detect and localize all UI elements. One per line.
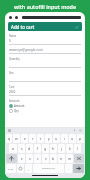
button[interactable]: Voice input	[73, 129, 76, 132]
staticText: e	[24, 136, 26, 141]
button[interactable]: g	[42, 144, 49, 153]
staticText: g	[44, 146, 47, 151]
staticText: h	[52, 146, 55, 151]
button[interactable]: i	[61, 134, 68, 143]
button[interactable]: u	[53, 134, 60, 143]
staticText: v	[45, 156, 47, 161]
staticText: w	[15, 136, 18, 141]
staticText: English (US)	[42, 167, 55, 170]
staticText: s	[21, 146, 23, 151]
button[interactable]: Amount	[9, 104, 81, 108]
staticText: Qty	[14, 109, 19, 113]
button[interactable]: English (US)	[33, 164, 64, 173]
staticText: j	[61, 146, 62, 151]
button[interactable]: Backspace	[74, 154, 84, 163]
button[interactable]: o	[69, 134, 76, 143]
button[interactable]: k	[66, 144, 73, 153]
staticText: b	[52, 156, 55, 161]
button[interactable]: Size	[9, 71, 81, 82]
staticText: r	[32, 136, 34, 141]
staticText: Quantity	[9, 57, 20, 61]
button[interactable]: t	[37, 134, 44, 143]
button[interactable]: www.xyz@google.co.in	[9, 48, 81, 54]
staticText: a	[12, 146, 14, 151]
staticText: Amount	[14, 104, 25, 108]
staticText: with autofill input mode	[0, 3, 90, 10]
staticText: m	[68, 156, 72, 161]
button[interactable]: r	[29, 134, 36, 143]
button[interactable]: l	[74, 144, 81, 153]
staticText: y	[48, 136, 50, 141]
button[interactable]: w	[13, 134, 20, 143]
staticText: p	[79, 136, 82, 141]
staticText: www.xyz@google.co.in	[9, 48, 44, 52]
button[interactable]: q	[6, 134, 12, 143]
button[interactable]: Qty	[9, 109, 81, 113]
staticText: i	[64, 136, 65, 141]
staticText: o	[71, 136, 74, 141]
staticText: Amount	[9, 99, 20, 103]
staticText: Size	[9, 71, 14, 75]
button[interactable]: z	[18, 154, 25, 163]
staticText: Name	[9, 34, 17, 38]
staticText: Cost	[9, 85, 15, 89]
button[interactable]: n	[58, 154, 65, 163]
button[interactable]: b	[50, 154, 57, 163]
button[interactable]: Settings	[79, 129, 82, 132]
button[interactable]: ,	[25, 164, 32, 173]
button[interactable]: p	[77, 134, 84, 143]
staticText: ?123	[8, 167, 14, 170]
staticText: c	[37, 156, 39, 161]
button[interactable]: Emoji	[17, 164, 24, 173]
staticText: .	[68, 166, 69, 171]
staticText: q	[8, 136, 11, 141]
staticText: l	[77, 146, 78, 151]
staticText: d	[28, 146, 31, 151]
button[interactable]: a	[9, 144, 17, 153]
staticText: x	[29, 156, 31, 161]
button[interactable]: Name	[9, 34, 81, 45]
button[interactable]: c	[34, 154, 41, 163]
staticText: Add to cart	[11, 24, 35, 30]
button[interactable]: Add to cart	[8, 22, 82, 31]
button[interactable]: Quantity	[9, 57, 81, 68]
staticText: n	[60, 156, 63, 161]
button[interactable]: Enter	[73, 164, 84, 173]
staticText: 20.0	[9, 90, 16, 94]
button[interactable]: j	[58, 144, 65, 153]
button[interactable]: .	[65, 164, 72, 173]
button[interactable]: h	[50, 144, 57, 153]
button[interactable]: y	[45, 134, 52, 143]
button[interactable]: e	[21, 134, 28, 143]
staticText: t	[40, 136, 42, 141]
button[interactable]: d	[26, 144, 33, 153]
staticText: S	[9, 39, 11, 43]
staticText: f	[37, 146, 39, 151]
button[interactable]: f	[34, 144, 41, 153]
staticText: z	[21, 156, 23, 161]
button[interactable]: x	[26, 154, 33, 163]
button[interactable]: m	[66, 154, 73, 163]
button[interactable]: Shift	[6, 154, 17, 163]
staticText: k	[69, 146, 71, 151]
staticText: u	[55, 136, 58, 141]
staticText: ,	[28, 166, 29, 171]
button[interactable]: ?123	[6, 164, 16, 173]
button[interactable]: s	[18, 144, 25, 153]
button[interactable]: v	[42, 154, 49, 163]
button[interactable]: Cost	[9, 85, 81, 96]
